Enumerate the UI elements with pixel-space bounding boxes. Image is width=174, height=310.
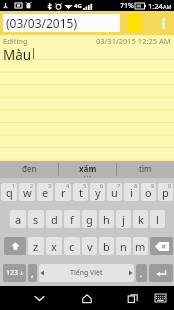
staticText: 1 xyxy=(12,183,16,189)
button[interactable]: r xyxy=(55,183,71,201)
button[interactable]: t xyxy=(73,183,88,201)
button[interactable]: m xyxy=(133,237,148,255)
staticText: f xyxy=(70,212,74,227)
staticText: AM xyxy=(163,3,172,10)
button[interactable]: e xyxy=(37,183,53,201)
button[interactable]: o xyxy=(141,183,156,201)
button[interactable]: Tiếng Việt xyxy=(39,264,134,282)
staticText: 123 xyxy=(6,268,19,278)
staticText: 5 xyxy=(83,183,87,189)
staticText: u xyxy=(111,185,118,200)
button[interactable]: đen xyxy=(0,161,58,178)
staticText: g xyxy=(86,212,93,227)
staticText: 8 xyxy=(134,183,138,189)
button[interactable]: Shift xyxy=(4,237,26,255)
button[interactable]: g xyxy=(82,210,97,228)
staticText: d xyxy=(51,212,58,227)
staticText: e xyxy=(42,185,49,200)
staticText: i xyxy=(130,185,133,200)
button[interactable]: k xyxy=(133,210,148,228)
button[interactable]: Back xyxy=(27,286,51,310)
staticText: Editing xyxy=(3,36,28,46)
button[interactable]: xám xyxy=(59,161,116,178)
staticText: tìm xyxy=(139,163,152,174)
button[interactable]: tìm xyxy=(117,161,174,178)
staticText: q xyxy=(6,185,13,200)
button[interactable]: l xyxy=(150,210,165,228)
button[interactable]: n xyxy=(116,237,131,255)
staticText: xám xyxy=(79,163,97,174)
button[interactable]: f xyxy=(64,210,80,228)
staticText: Màu xyxy=(3,46,32,64)
staticText: a xyxy=(15,212,22,227)
staticText: 3 xyxy=(48,183,52,189)
staticText: n xyxy=(120,239,127,254)
staticText: w xyxy=(23,185,32,200)
button[interactable]: Symbols xyxy=(3,264,26,282)
button[interactable]: i xyxy=(124,183,139,201)
staticText: p xyxy=(162,185,169,200)
button[interactable]: z xyxy=(28,237,44,255)
button[interactable]: b xyxy=(99,237,114,255)
staticText: m xyxy=(135,239,146,254)
button[interactable]: More options xyxy=(152,11,174,35)
button[interactable]: h xyxy=(99,210,114,228)
staticText: h xyxy=(103,212,110,227)
staticText: b xyxy=(103,239,110,254)
staticText: 6 xyxy=(100,183,104,189)
button[interactable]: Period xyxy=(136,264,147,282)
button[interactable]: Enter xyxy=(149,264,173,282)
button[interactable]: p xyxy=(158,183,173,201)
staticText: Tiếng Việt xyxy=(70,268,103,278)
staticText: 7 xyxy=(117,183,121,189)
button[interactable]: s xyxy=(28,210,44,228)
button[interactable]: w xyxy=(19,183,35,201)
staticText: , xyxy=(31,267,34,279)
staticText: t xyxy=(79,185,83,200)
staticText: k xyxy=(138,212,144,227)
staticText: z xyxy=(33,239,39,254)
staticText: 1:24 xyxy=(148,1,163,11)
staticText: 2 xyxy=(30,183,34,189)
button[interactable]: y xyxy=(90,183,105,201)
button[interactable]: q xyxy=(1,183,17,201)
button[interactable]: Comma xyxy=(28,264,37,282)
staticText: x xyxy=(51,239,57,254)
button[interactable]: x xyxy=(46,237,62,255)
staticText: v xyxy=(87,239,93,254)
staticText: o xyxy=(145,185,152,200)
button[interactable]: Recents xyxy=(121,286,145,310)
staticText: 0 xyxy=(168,183,172,189)
staticText: j xyxy=(122,212,125,227)
button[interactable]: Home xyxy=(75,286,99,310)
staticText: 4G xyxy=(74,2,82,10)
staticText: đen xyxy=(22,163,37,174)
staticText: 4 xyxy=(66,183,70,189)
staticText: l xyxy=(156,212,159,227)
button[interactable]: a xyxy=(10,210,26,228)
staticText: 9 xyxy=(151,183,155,189)
button[interactable]: d xyxy=(46,210,62,228)
button[interactable]: v xyxy=(82,237,97,255)
staticText: y xyxy=(95,185,101,200)
button[interactable]: c xyxy=(64,237,80,255)
button[interactable]: u xyxy=(107,183,122,201)
button[interactable]: (03/03/2015) xyxy=(3,14,120,32)
staticText: (03/03/2015) xyxy=(6,15,78,31)
button[interactable]: Keyboard xyxy=(148,286,172,310)
staticText: 71% xyxy=(120,1,134,11)
button[interactable]: j xyxy=(116,210,131,228)
staticText: r xyxy=(61,185,66,200)
button[interactable]: Backspace xyxy=(150,237,173,255)
staticText: c xyxy=(69,239,75,254)
staticText: . xyxy=(140,267,143,279)
staticText: s xyxy=(33,212,39,227)
staticText: 03/31/2015 12:25 AM xyxy=(96,36,171,46)
